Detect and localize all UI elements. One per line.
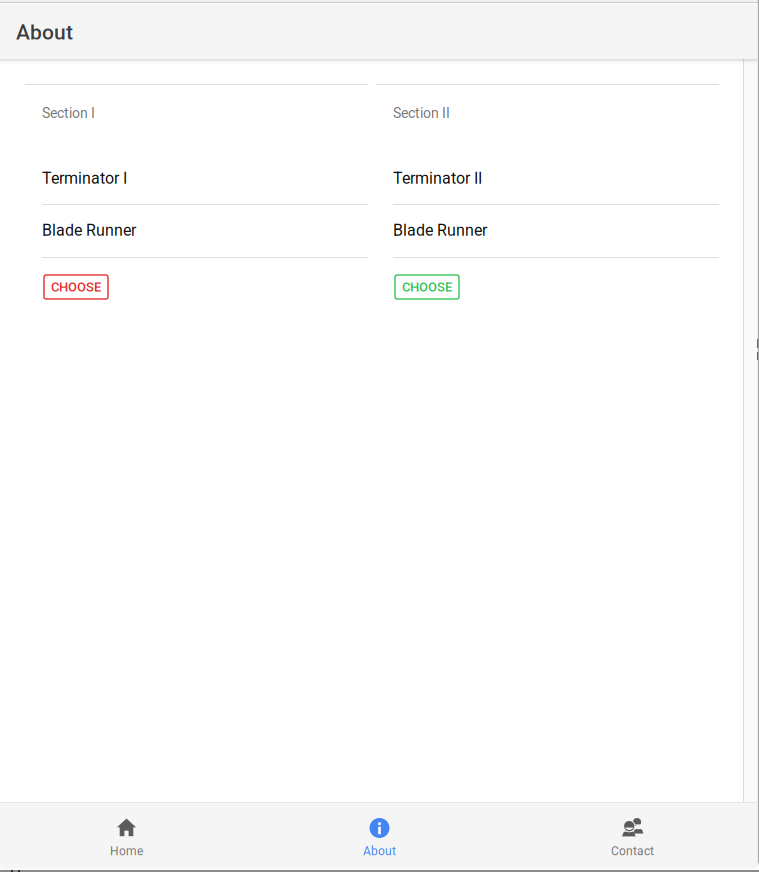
button[interactable]: Contact xyxy=(506,802,759,871)
staticText: CHOOSE xyxy=(402,279,452,295)
staticText: About xyxy=(16,20,73,45)
button[interactable]: About xyxy=(253,802,506,871)
staticText: Terminator I xyxy=(42,169,127,188)
staticText: Blade Runner xyxy=(393,221,487,240)
staticText: Section II xyxy=(393,105,450,121)
staticText: Terminator II xyxy=(393,169,482,188)
button[interactable]: Home xyxy=(0,802,253,871)
staticText: Section I xyxy=(42,105,95,121)
button[interactable]: CHOOSE xyxy=(44,275,108,299)
staticText: Contact xyxy=(611,844,654,858)
staticText: Blade Runner xyxy=(42,221,136,240)
staticText: CHOOSE xyxy=(51,279,101,295)
button[interactable]: CHOOSE xyxy=(395,275,459,299)
staticText: Home xyxy=(110,844,143,858)
staticText: About xyxy=(363,844,396,858)
